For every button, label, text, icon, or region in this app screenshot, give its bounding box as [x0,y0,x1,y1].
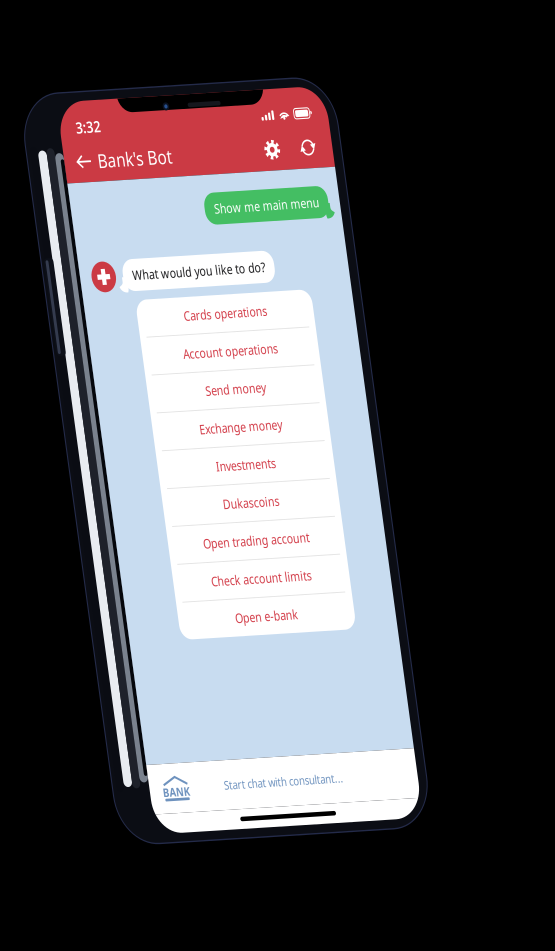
staticText: Investments [153,402,237,421]
staticText: Cards operations [136,234,253,253]
button[interactable]: Open trading account [72,475,318,517]
button[interactable]: Exchange money [72,349,318,391]
staticText: Open trading account [120,486,269,505]
staticText: Dukascoins [155,444,234,463]
button[interactable]: Send money [72,307,318,349]
button[interactable]: Investments [72,391,318,433]
button[interactable]: Account operations [72,265,318,307]
staticText: What would you like to do? [73,185,259,205]
button[interactable]: Cards operations [72,223,318,265]
staticText: Check account limits [124,528,265,547]
staticText: Show me main menu [199,118,346,137]
staticText: Exchange money [137,360,253,379]
button[interactable]: Settings [275,50,307,84]
staticText: Send money [152,318,237,337]
staticText: Open e-bank [151,570,239,589]
staticText: Start chat with consultant... [104,754,271,771]
button[interactable]: Check account limits [72,517,318,559]
button[interactable]: Open e-bank [72,559,318,600]
button[interactable]: Dukascoins [72,433,318,475]
staticText: Account operations [128,276,261,295]
